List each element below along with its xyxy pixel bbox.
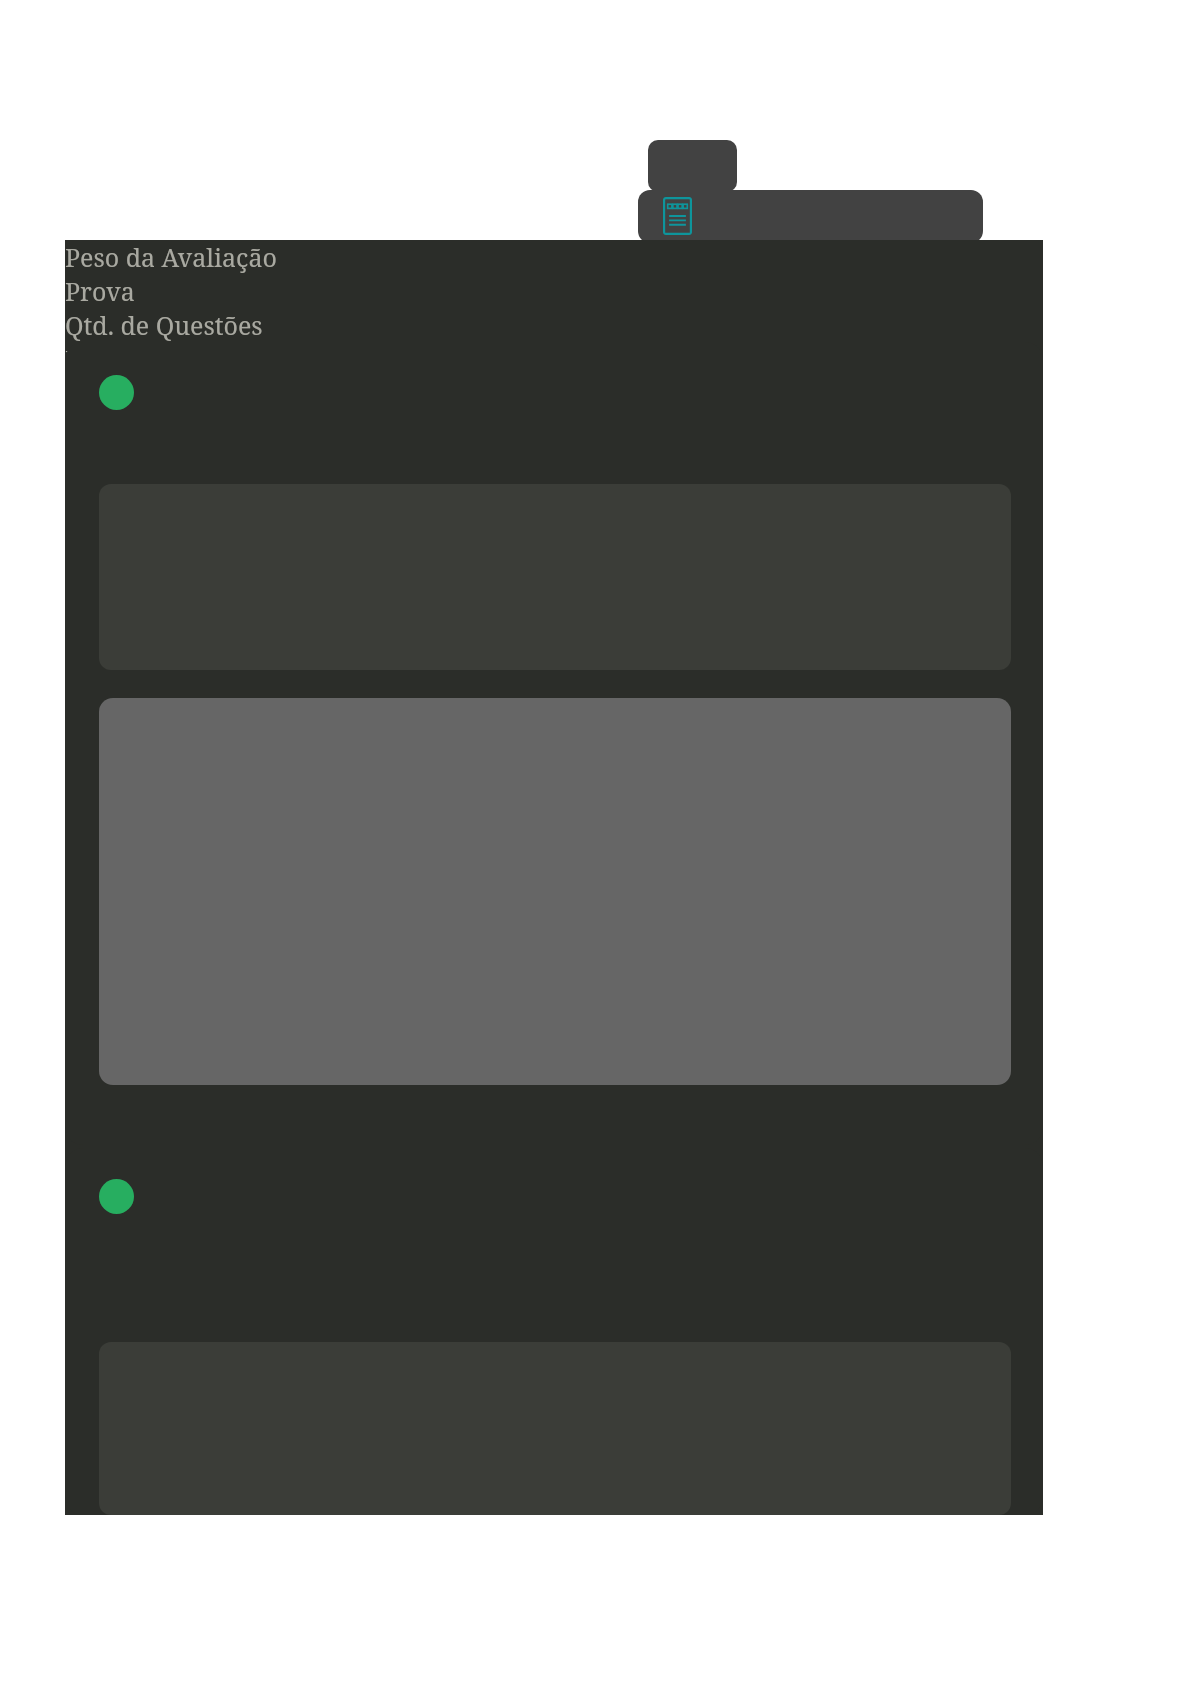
staticText: Nota [65,342,122,376]
staticText: Peso da Avaliação [65,240,277,274]
button[interactable]: Assessment document [663,197,692,235]
staticText: Prova [65,274,135,308]
button[interactable]: More options [648,140,737,192]
staticText: Qtd. de Questões [65,308,263,342]
button[interactable] [65,342,1043,1145]
button[interactable] [65,1148,1043,1515]
